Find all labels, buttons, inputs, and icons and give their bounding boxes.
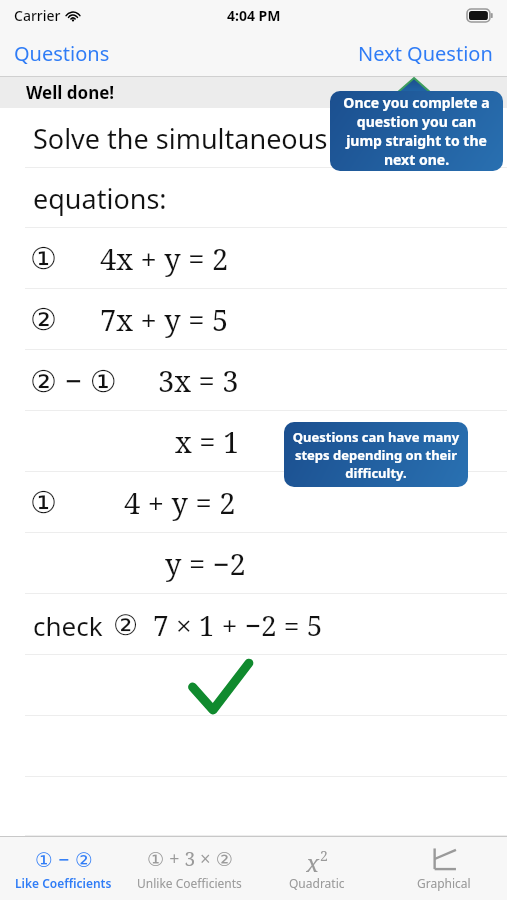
staticText: ①	[30, 485, 57, 520]
staticText: 4:04 PM	[227, 6, 281, 25]
button[interactable]: Like Coefficients	[15, 837, 112, 900]
button[interactable]: Next Question	[358, 40, 493, 67]
staticText: 4x + y = 2	[100, 239, 229, 278]
staticText: ① + 3 × ②	[147, 846, 233, 872]
staticText: Questions can have many steps depending …	[292, 428, 460, 482]
button[interactable]: Solve the simultaneous	[0, 108, 507, 168]
staticText: ②	[113, 609, 139, 642]
staticText: 7 × 1 + −2 = 5	[153, 606, 323, 644]
staticText: 2	[320, 846, 328, 862]
button[interactable]: y = −2	[0, 533, 507, 594]
button[interactable]: ①	[0, 228, 507, 289]
button[interactable]: Once you complete a question you can jum…	[330, 91, 503, 171]
staticText: Questions	[14, 40, 110, 67]
staticText: Graphical	[417, 875, 471, 891]
staticText: Quadratic	[289, 875, 345, 891]
button[interactable]	[0, 655, 507, 716]
staticText: x = 1	[175, 422, 240, 461]
staticText: Carrier	[14, 6, 61, 25]
staticText: equations:	[33, 180, 167, 217]
button[interactable]: Questions can have many steps depending …	[284, 422, 468, 487]
staticText: 3x = 3	[158, 361, 239, 400]
staticText: ① − ②	[35, 846, 93, 872]
staticText: Once you complete a question you can jum…	[338, 93, 495, 169]
staticText: ② − ①	[30, 360, 117, 401]
button[interactable]: ①	[0, 472, 507, 533]
button[interactable]: Graphical	[417, 837, 471, 900]
button[interactable]: x = 1	[0, 411, 507, 472]
button[interactable]: ②	[0, 289, 507, 350]
staticText: Like Coefficients	[15, 875, 112, 891]
staticText: x	[306, 846, 320, 872]
staticText: Next Question	[358, 40, 493, 67]
staticText: 7x + y = 5	[100, 300, 229, 339]
staticText: y = −2	[165, 544, 246, 583]
button[interactable]: check	[0, 594, 507, 655]
button[interactable]: equations:	[0, 168, 507, 228]
staticText: Solve the simultaneous	[33, 120, 328, 157]
staticText: ②	[30, 302, 57, 337]
button[interactable]: Quadratic	[289, 837, 345, 900]
button[interactable]: ② − ①	[0, 350, 507, 411]
staticText: 4 + y = 2	[124, 483, 236, 522]
staticText: check	[33, 608, 103, 643]
staticText: Unlike Coefficients	[137, 875, 242, 891]
staticText: ①	[30, 241, 57, 276]
button[interactable]: Unlike Coefficients	[137, 837, 242, 900]
button[interactable]: Questions	[14, 40, 110, 67]
staticText: Well done!	[26, 81, 115, 104]
